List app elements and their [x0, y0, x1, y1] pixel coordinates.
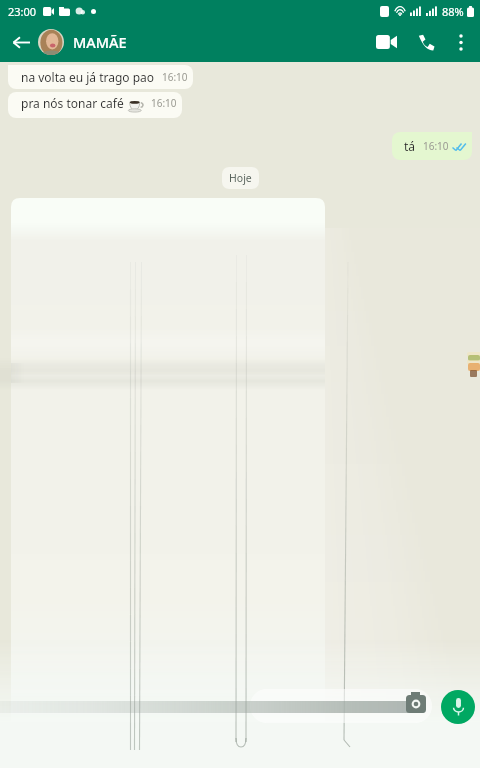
- button[interactable]: Back: [6, 27, 36, 57]
- staticText: 16:10: [423, 139, 449, 153]
- staticText: 23:00: [8, 4, 37, 19]
- staticText: 16:10: [151, 96, 177, 110]
- button[interactable]: Call: [406, 22, 446, 62]
- button[interactable]: [250, 689, 432, 723]
- staticText: 88%: [442, 4, 464, 19]
- staticText: 16:10: [162, 70, 188, 84]
- staticText: tá: [404, 138, 416, 154]
- button[interactable]: More options: [446, 27, 476, 57]
- button[interactable]: Record voice message: [441, 690, 475, 724]
- button[interactable]: pra nós tonar café: [8, 92, 182, 118]
- button[interactable]: na volta eu já trago pao: [8, 65, 193, 89]
- staticText: pra nós tonar café: [21, 95, 124, 111]
- staticText: MAMÃE: [73, 32, 127, 52]
- button[interactable]: tá: [392, 132, 472, 160]
- staticText: Hoje: [229, 171, 252, 185]
- button[interactable]: Video call: [366, 22, 406, 62]
- staticText: na volta eu já trago pao: [21, 69, 155, 85]
